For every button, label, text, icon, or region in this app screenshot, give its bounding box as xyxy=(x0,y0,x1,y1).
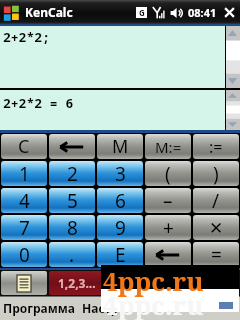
button[interactable]: 2 xyxy=(49,161,95,186)
button[interactable]: 7 xyxy=(1,215,47,240)
button[interactable]: Expression list xyxy=(1,271,47,295)
staticText: 3 xyxy=(115,161,126,186)
staticText: 6 xyxy=(115,188,126,213)
staticText: := xyxy=(209,136,223,158)
staticText: 1,2,3... xyxy=(58,275,96,291)
button[interactable]: 4 xyxy=(1,188,47,213)
staticText: = xyxy=(211,242,222,267)
button[interactable]: C xyxy=(1,134,47,159)
button[interactable]: Backspace xyxy=(49,134,95,159)
staticText: 4 xyxy=(19,188,30,213)
button[interactable]: ✕ xyxy=(193,215,239,240)
staticText: 08:41 xyxy=(188,5,217,20)
button[interactable]: Настр xyxy=(82,300,119,316)
button[interactable]: = xyxy=(193,242,239,267)
button[interactable]: + xyxy=(145,215,191,240)
staticText: KenCalc xyxy=(25,4,73,20)
staticText: 2+2*2 = 6 xyxy=(3,94,74,112)
button[interactable]: ) xyxy=(193,161,239,186)
button[interactable]: Scroll bar xyxy=(225,90,240,130)
staticText: / xyxy=(212,188,220,213)
staticText: 5 xyxy=(67,188,78,213)
staticText: 4ppc.ru xyxy=(103,287,204,320)
staticText: + xyxy=(163,215,174,240)
button[interactable]: ( xyxy=(145,161,191,186)
staticText: Программа xyxy=(3,300,75,316)
button[interactable]: 8 xyxy=(49,215,95,240)
button[interactable]: E xyxy=(97,242,143,267)
button[interactable]: Scroll bar xyxy=(225,26,240,88)
staticText: 2 xyxy=(67,161,78,186)
staticText: G xyxy=(139,7,145,18)
button[interactable]: := xyxy=(193,134,239,159)
button[interactable]: Signal strength xyxy=(152,6,165,19)
staticText: 9 xyxy=(115,215,126,240)
staticText: Настр xyxy=(82,300,119,316)
staticText: ( xyxy=(165,161,171,186)
staticText: ✕ xyxy=(209,218,224,238)
button[interactable]: 0 xyxy=(1,242,47,267)
button[interactable]: . xyxy=(49,242,95,267)
button[interactable]: 5 xyxy=(49,188,95,213)
button[interactable]: 2+2*2; xyxy=(0,26,225,88)
button[interactable]: 3 xyxy=(97,161,143,186)
staticText: ) xyxy=(213,161,219,186)
button[interactable]: Start menu xyxy=(3,4,20,21)
button[interactable]: / xyxy=(193,188,239,213)
button[interactable]: Close xyxy=(224,7,235,18)
staticText: . xyxy=(69,242,75,267)
button[interactable]: 6 xyxy=(97,188,143,213)
button[interactable]: GPRS connected xyxy=(136,7,147,18)
button[interactable]: M:= xyxy=(145,134,191,159)
button[interactable]: Программа xyxy=(3,300,75,316)
button[interactable]: 2+2*2 = 6 xyxy=(0,90,225,130)
staticText: 0 xyxy=(19,242,30,267)
staticText: M xyxy=(112,134,129,159)
button[interactable]: Volume xyxy=(170,7,185,19)
button[interactable]: Enter xyxy=(145,242,191,267)
staticText: C xyxy=(18,134,30,159)
button[interactable]: M xyxy=(97,134,143,159)
staticText: 8 xyxy=(67,215,78,240)
staticText: E xyxy=(115,242,126,267)
staticText: 7 xyxy=(19,215,30,240)
staticText: 2+2*2; xyxy=(3,28,50,46)
staticText: 4ppc.ru xyxy=(103,263,204,298)
button[interactable]: 9 xyxy=(97,215,143,240)
staticText: 1 xyxy=(19,161,30,186)
staticText: – xyxy=(163,188,173,213)
button[interactable]: – xyxy=(145,188,191,213)
staticText: M:= xyxy=(155,137,182,157)
button[interactable]: 1 xyxy=(1,161,47,186)
button[interactable]: 1,2,3... xyxy=(49,271,104,295)
